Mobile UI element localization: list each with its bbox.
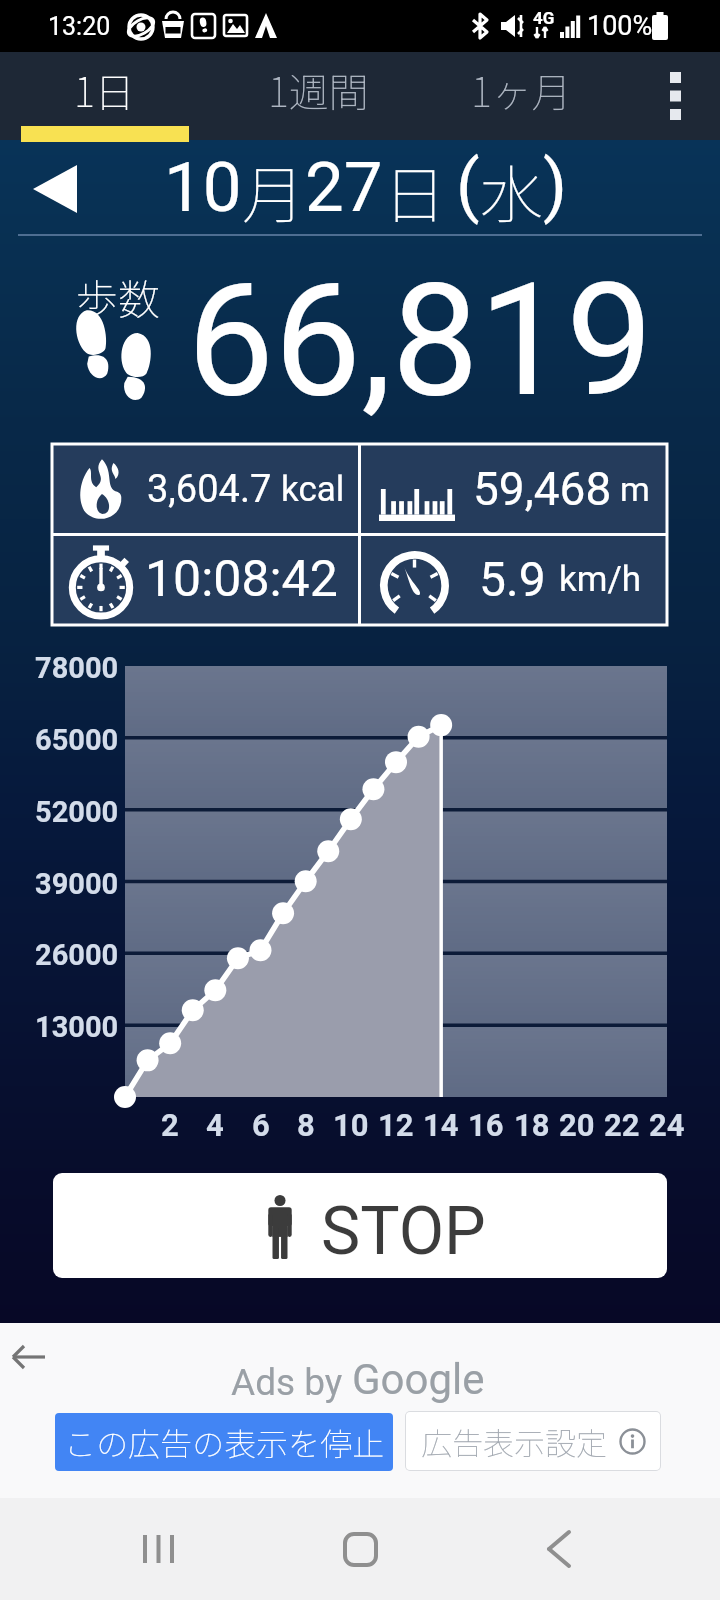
button[interactable]: More options	[630, 52, 720, 140]
button[interactable]: STOP	[53, 1173, 667, 1278]
staticText: 4	[206, 1107, 224, 1143]
staticText: 水	[480, 145, 543, 233]
staticText: 2	[161, 1107, 179, 1143]
staticText: 6	[252, 1107, 270, 1143]
staticText: 65000	[35, 723, 119, 757]
staticText: 12	[378, 1107, 414, 1143]
button[interactable]: 1週間	[208, 52, 428, 128]
button[interactable]: Home	[320, 1514, 400, 1584]
staticText: 8	[297, 1107, 315, 1143]
staticText: 22	[604, 1107, 640, 1143]
button[interactable]: この広告の表示を停止	[55, 1413, 393, 1471]
staticText: 27	[305, 147, 383, 228]
staticText: 1週間	[268, 61, 369, 119]
staticText: Google	[352, 1355, 485, 1404]
staticText: 5.9	[479, 551, 546, 607]
staticText: 52000	[35, 795, 119, 829]
staticText: 月	[242, 145, 305, 233]
staticText: 16	[468, 1107, 504, 1143]
button[interactable]: 5.9	[359, 534, 666, 624]
staticText: 39000	[35, 867, 119, 901]
button[interactable]: Recent apps	[120, 1514, 200, 1584]
staticText: kcal	[281, 469, 345, 510]
staticText: STOP	[321, 1193, 486, 1270]
staticText: 3,604.7	[147, 467, 272, 512]
staticText: 歩数	[76, 266, 161, 327]
button[interactable]: 3,604.7	[52, 444, 359, 534]
staticText: )	[543, 145, 568, 226]
staticText: 14	[423, 1107, 459, 1143]
staticText: (	[456, 145, 480, 226]
staticText: km/h	[559, 559, 642, 600]
button[interactable]: 1日	[0, 52, 208, 128]
staticText: 1日	[74, 61, 135, 119]
staticText: m	[620, 469, 650, 509]
staticText: 10	[164, 147, 242, 228]
staticText: 4G	[533, 8, 555, 28]
button[interactable]: Previous day	[24, 160, 86, 218]
staticText: 100%	[587, 10, 653, 42]
staticText: 78000	[35, 651, 119, 685]
button[interactable]: Back	[518, 1514, 598, 1584]
staticText: 26000	[35, 938, 119, 972]
staticText: 66,819	[187, 250, 654, 432]
staticText: 広告表示設定	[421, 1419, 607, 1464]
staticText: 20	[559, 1107, 595, 1143]
button[interactable]: 広告表示設定	[405, 1411, 661, 1471]
staticText: Ads by	[231, 1361, 352, 1404]
staticText: 10	[333, 1107, 369, 1143]
staticText: 13000	[35, 1010, 119, 1044]
staticText: 13:20	[48, 12, 111, 41]
staticText: 18	[514, 1107, 550, 1143]
staticText: この広告の表示を停止	[64, 1419, 385, 1465]
button[interactable]: 1ヶ月	[428, 52, 614, 128]
staticText: 1ヶ月	[471, 61, 572, 119]
button[interactable]: 59,468	[359, 444, 666, 534]
staticText: 日	[383, 145, 446, 233]
staticText: 59,468	[473, 462, 612, 516]
staticText: 10:08:42	[145, 550, 338, 609]
button[interactable]: Back	[2, 1331, 54, 1383]
staticText: 24	[649, 1107, 685, 1143]
button[interactable]: 10:08:42	[52, 534, 359, 624]
button[interactable]: 10	[0, 145, 720, 233]
